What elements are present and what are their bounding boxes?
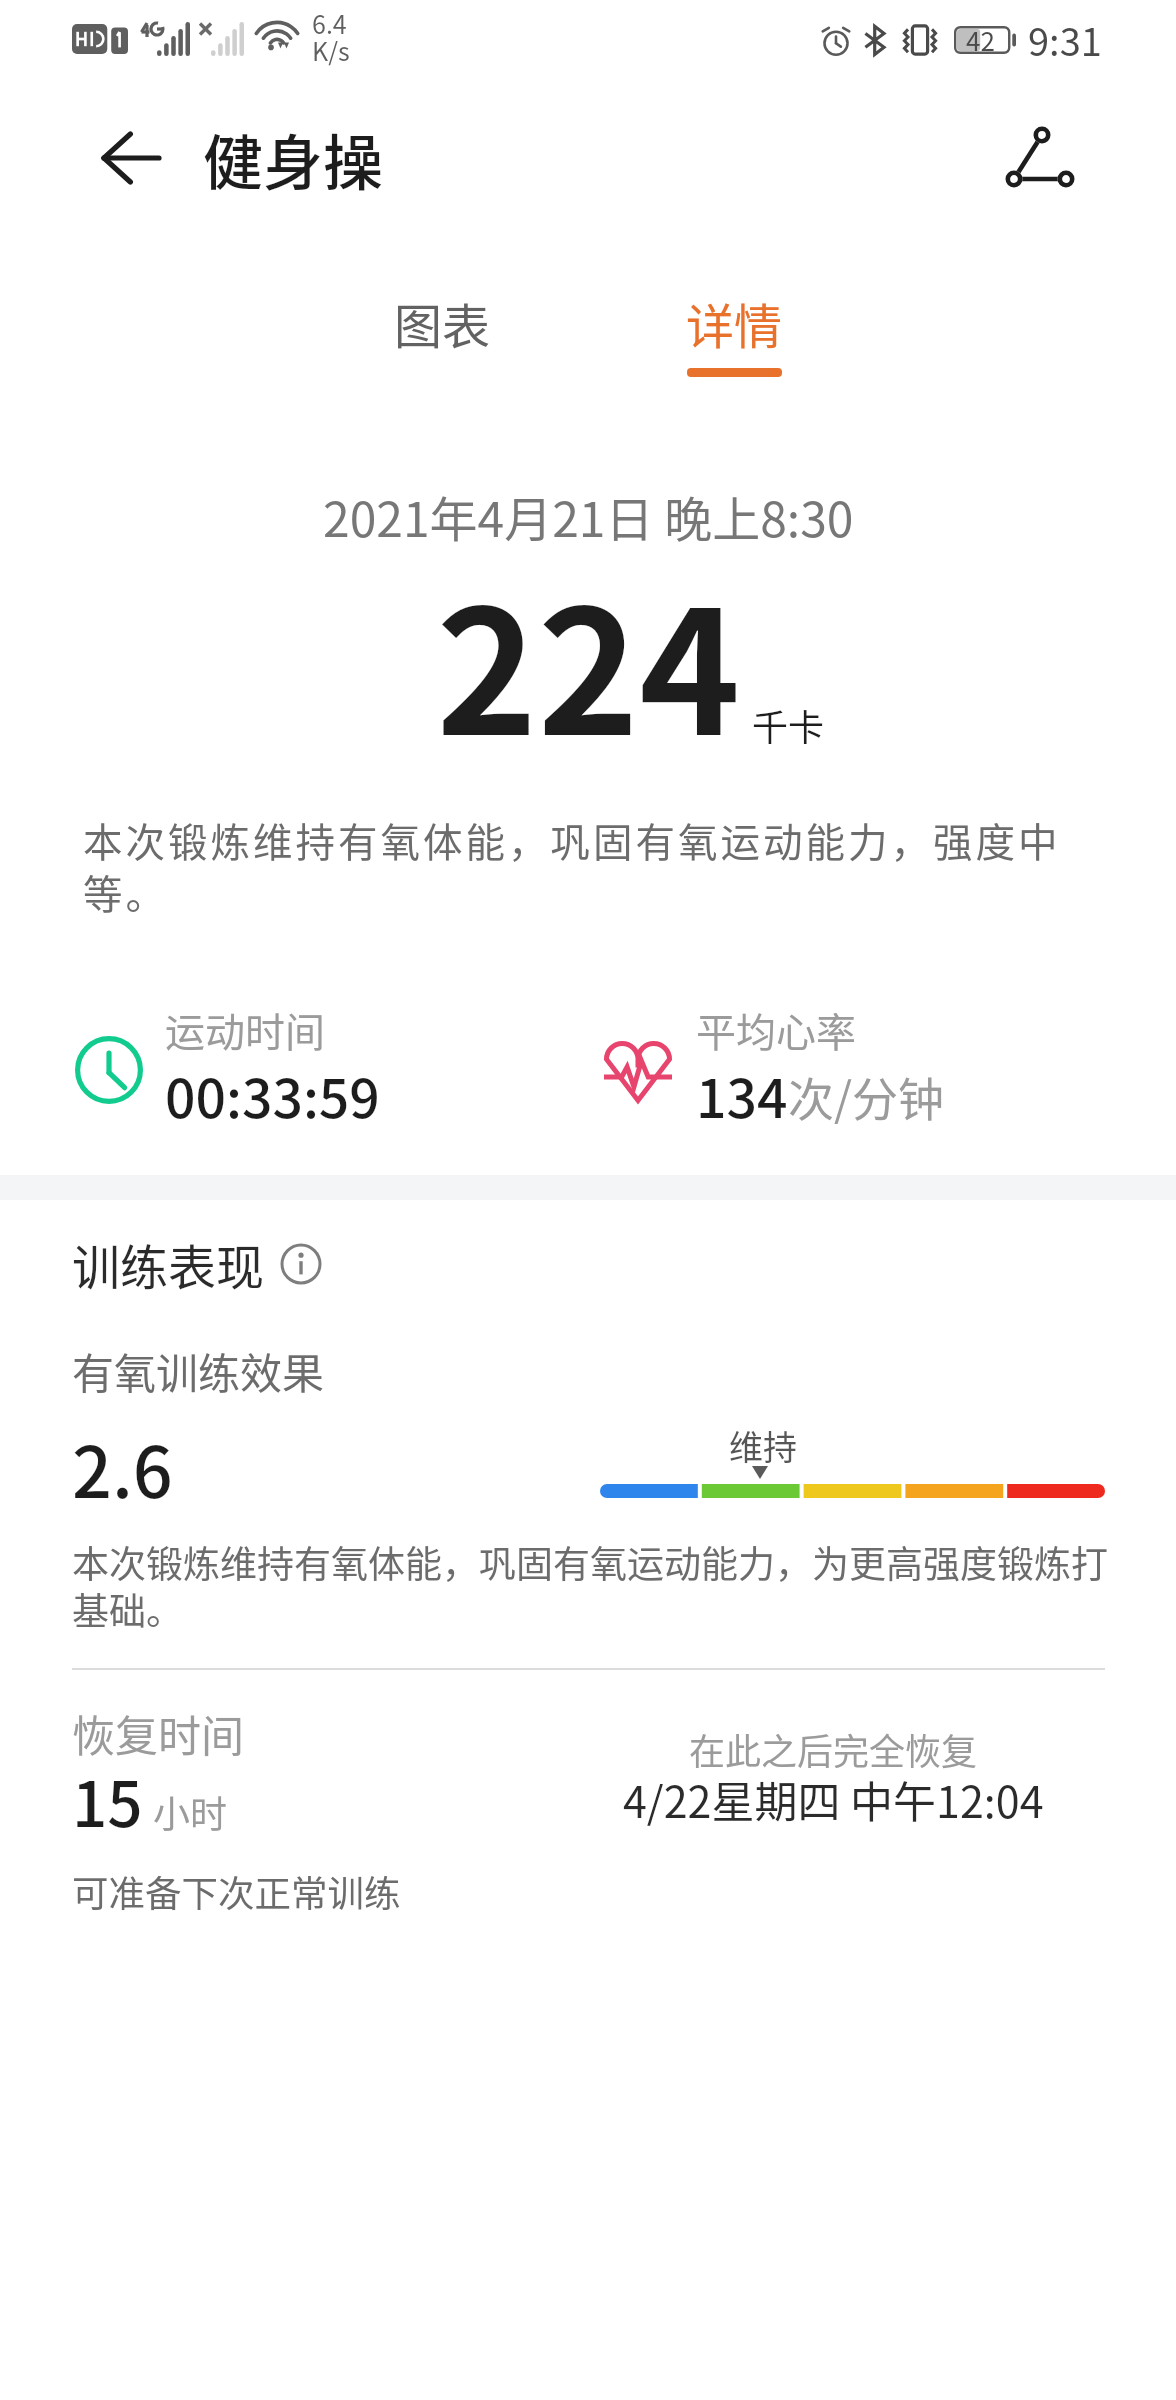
staticText: K/s bbox=[312, 39, 350, 66]
staticText: 2021年4月21日 晚上8:30 bbox=[323, 481, 854, 551]
staticText: 千卡 bbox=[752, 699, 825, 751]
button[interactable]: 详情 bbox=[594, 230, 874, 400]
staticText: 9:31 bbox=[1028, 12, 1102, 67]
staticText: 2.6 bbox=[72, 1417, 173, 1518]
staticText: 224 bbox=[436, 535, 741, 784]
staticText: 00:33:59 bbox=[165, 1056, 380, 1133]
staticText: 本次锻炼维持有氧体能，巩固有氧运动能力，强度中等。 bbox=[83, 815, 1119, 919]
staticText: 维持 bbox=[729, 1421, 797, 1470]
staticText: 可准备下次正常训练 bbox=[72, 1865, 401, 1918]
button[interactable]: About training performance bbox=[281, 1244, 321, 1284]
staticText: 4/22星期四 中午12:04 bbox=[623, 1768, 1044, 1830]
staticText: 运动时间 bbox=[165, 1001, 325, 1059]
staticText: 有氧训练效果 bbox=[72, 1340, 325, 1401]
button[interactable]: Back bbox=[83, 110, 179, 206]
button[interactable]: Share bbox=[992, 110, 1088, 206]
staticText: 在此之后完全恢复 bbox=[689, 1723, 978, 1775]
staticText: 15 bbox=[72, 1755, 143, 1845]
staticText: 次/分钟 bbox=[788, 1063, 945, 1130]
staticText: 平均心率 bbox=[696, 1001, 856, 1059]
staticText: 42 bbox=[966, 21, 995, 59]
staticText: 健身操 bbox=[203, 115, 383, 202]
staticText: 图表 bbox=[394, 288, 491, 358]
button[interactable]: 图表 bbox=[302, 230, 582, 400]
staticText: 详情 bbox=[686, 288, 783, 358]
staticText: 恢复时间 bbox=[72, 1702, 244, 1764]
staticText: 小时 bbox=[153, 1785, 227, 1839]
staticText: 134 bbox=[696, 1056, 788, 1133]
staticText: 本次锻炼维持有氧体能，巩固有氧运动能力，为更高强度锻炼打基础。 bbox=[72, 1540, 1122, 1634]
staticText: 6.4 bbox=[312, 12, 347, 39]
staticText: 训练表现 bbox=[72, 1229, 265, 1299]
